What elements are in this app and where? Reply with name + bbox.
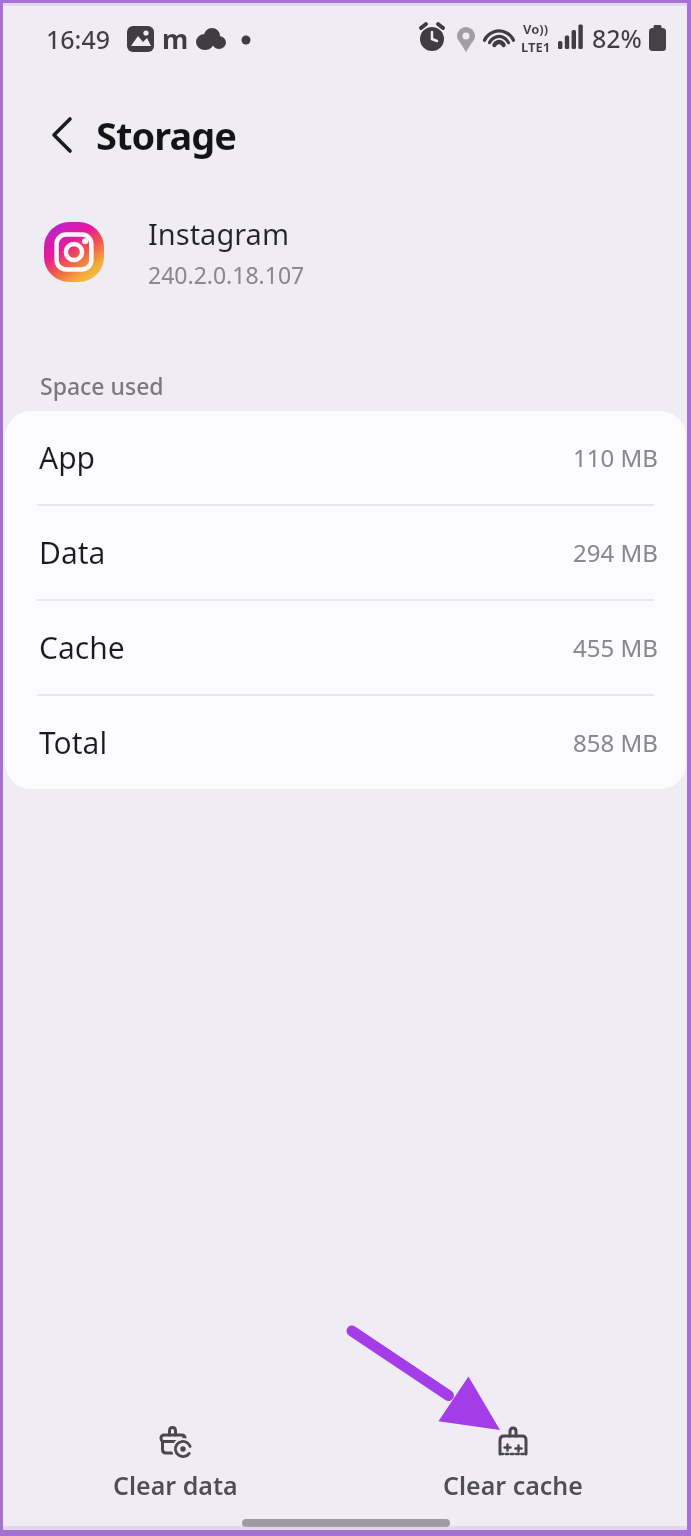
staticText: Space used	[40, 370, 164, 401]
staticText: 110 MB	[573, 441, 658, 474]
button[interactable]: Cache	[5, 601, 686, 694]
button[interactable]: Clear data	[95, 1421, 256, 1506]
staticText: Storage	[96, 109, 236, 161]
button[interactable]: Data	[5, 506, 686, 599]
staticText: App	[39, 437, 96, 478]
button[interactable]: Clear cache	[425, 1421, 601, 1506]
staticText: Instagram	[148, 214, 289, 253]
staticText: 294 MB	[573, 536, 658, 569]
staticText: Cache	[39, 627, 125, 668]
staticText: 16:49	[46, 22, 111, 56]
staticText: Total	[39, 722, 108, 763]
staticText: Clear data	[113, 1468, 238, 1502]
staticText: 82%	[592, 21, 642, 55]
staticText: m	[162, 20, 189, 57]
staticText: Data	[39, 532, 106, 573]
staticText: 455 MB	[573, 631, 658, 664]
staticText: LTE1	[521, 38, 551, 56]
button[interactable]: Total	[5, 696, 686, 789]
staticText: 240.2.0.18.107	[148, 259, 305, 290]
staticText: Clear cache	[443, 1468, 583, 1502]
button[interactable]: App	[5, 411, 686, 504]
staticText: Vo))	[523, 20, 549, 38]
staticText: 858 MB	[573, 726, 658, 759]
button[interactable]: Storage	[0, 76, 691, 194]
